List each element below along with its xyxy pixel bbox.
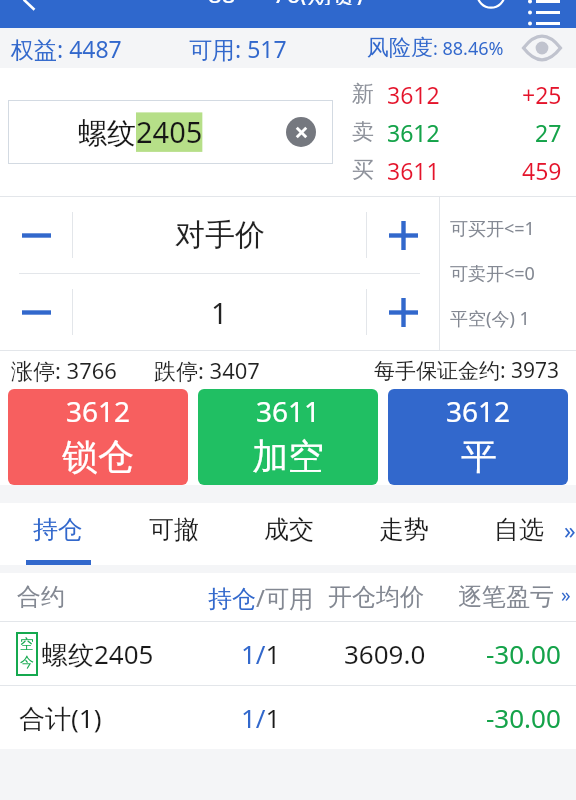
button[interactable]: Decrease (0, 197, 72, 273)
staticText: 3609.0 (344, 636, 426, 671)
button[interactable]: 3611 (198, 389, 378, 485)
button[interactable]: 空 (0, 622, 576, 685)
staticText: 加空 (252, 434, 324, 479)
staticText: 持仓/可用 (208, 581, 313, 614)
button[interactable]: 3612 (388, 389, 568, 485)
staticText: 逐笔盈亏 (458, 582, 554, 612)
staticText: 每手保证金约: 3973 (374, 356, 560, 385)
button[interactable]: 螺纹2405 (8, 100, 333, 164)
staticText: 可卖开<=0 (450, 261, 535, 286)
staticText: 螺纹2405 (42, 636, 154, 672)
staticText: 持仓 (33, 514, 83, 545)
staticText: 88 76(期货) (208, 0, 363, 5)
staticText: 3611 (387, 155, 440, 186)
button[interactable]: 自选 (461, 503, 576, 565)
staticText: -30.00 (486, 636, 561, 671)
button[interactable]: Refresh (476, 0, 506, 8)
staticText: 3612 (387, 79, 440, 110)
staticText: 平 (461, 434, 497, 479)
staticText: 买 (352, 156, 374, 184)
button[interactable]: 成交 (231, 503, 346, 565)
staticText: 可用: 517 (189, 33, 287, 64)
staticText: 今 (20, 654, 34, 672)
staticText: 3611 (256, 392, 321, 430)
staticText: 1/1 (241, 700, 281, 735)
staticText: 可买开<=1 (450, 216, 535, 241)
staticText: 自选 (494, 514, 544, 545)
staticText: 涨停: 3766 (11, 355, 117, 385)
staticText: 1 (211, 293, 228, 332)
button[interactable]: 可撤 (116, 503, 231, 565)
button[interactable]: Menu (527, 0, 563, 8)
button[interactable]: 走势 (346, 503, 461, 565)
button[interactable]: Clear (286, 117, 316, 147)
staticText: 可撤 (149, 514, 199, 545)
staticText: 锁仓 (62, 434, 134, 479)
staticText: 合约 (17, 582, 65, 612)
staticText: » (561, 582, 571, 608)
button[interactable]: Increase (367, 274, 439, 350)
staticText: 1/1 (241, 636, 281, 671)
staticText: 成交 (264, 514, 314, 545)
staticText: 卖 (352, 118, 374, 146)
staticText: 3612 (387, 117, 440, 148)
staticText: 风险度: 88.46% (367, 34, 504, 62)
staticText: 空 (20, 636, 34, 654)
staticText: 对手价 (175, 216, 265, 254)
staticText: 459 (522, 155, 562, 186)
staticText: » (564, 514, 576, 545)
staticText: 螺纹2405 (78, 112, 203, 152)
button[interactable]: Back (10, 0, 46, 6)
button[interactable]: 3612 (8, 389, 188, 485)
staticText: 新 (352, 80, 374, 108)
staticText: 走势 (379, 514, 429, 545)
staticText: 跌停: 3407 (154, 355, 260, 385)
staticText: 开仓均价 (328, 582, 424, 612)
staticText: 权益: 4487 (11, 33, 122, 64)
button[interactable]: Increase (367, 197, 439, 273)
staticText: 平空(今) 1 (450, 306, 530, 331)
button[interactable]: Toggle balance visibility (524, 30, 560, 66)
staticText: 27 (535, 117, 562, 148)
staticText: 3612 (66, 392, 131, 430)
staticText: -30.00 (486, 700, 561, 735)
button[interactable]: Decrease (0, 274, 72, 350)
staticText: 合计(1) (19, 700, 102, 736)
staticText: +25 (522, 79, 562, 110)
staticText: 3612 (446, 392, 511, 430)
button[interactable]: 持仓 (0, 503, 116, 565)
